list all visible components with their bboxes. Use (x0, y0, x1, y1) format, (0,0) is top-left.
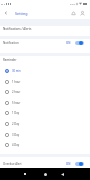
button[interactable]: 3 Day (0, 129, 90, 140)
staticText: 1 Day (12, 111, 20, 115)
button[interactable]: Home (41, 170, 49, 178)
button[interactable]: Notifications (69, 9, 77, 17)
button[interactable]: Back (58, 170, 66, 178)
staticText: ON (66, 41, 71, 45)
staticText: ON (66, 162, 71, 166)
button[interactable]: 1 hour (0, 76, 90, 87)
staticText: 2 hour (12, 90, 21, 94)
staticText: 5:04 (70, 2, 75, 5)
button[interactable]: 2 Day (0, 118, 90, 129)
button[interactable]: Account (78, 9, 86, 17)
button[interactable]: 1 Day (0, 107, 90, 118)
button[interactable]: 30 min (0, 65, 90, 76)
staticText: Setting (15, 11, 28, 16)
button[interactable]: Overdue Alert (0, 159, 90, 169)
staticText: 5 hour (12, 101, 21, 105)
staticText: Reminder (3, 58, 17, 62)
staticText: Overdue Alert (3, 162, 22, 166)
staticText: 2 Day (12, 122, 20, 126)
button[interactable]: 2 hour (0, 86, 90, 97)
button[interactable]: 5 hour (0, 97, 90, 108)
staticText: 1 hour (12, 80, 21, 84)
button[interactable]: Back (0, 7, 11, 19)
staticText: 4 Day (12, 143, 20, 147)
staticText: 3 Day (12, 133, 20, 137)
button[interactable]: Notification (0, 38, 90, 48)
staticText: Notification (3, 41, 19, 45)
button[interactable]: Recents (21, 170, 29, 178)
staticText: Notifications / Alerts (3, 27, 32, 31)
staticText: 30 min (12, 69, 21, 73)
button[interactable]: 4 Day (0, 139, 90, 150)
